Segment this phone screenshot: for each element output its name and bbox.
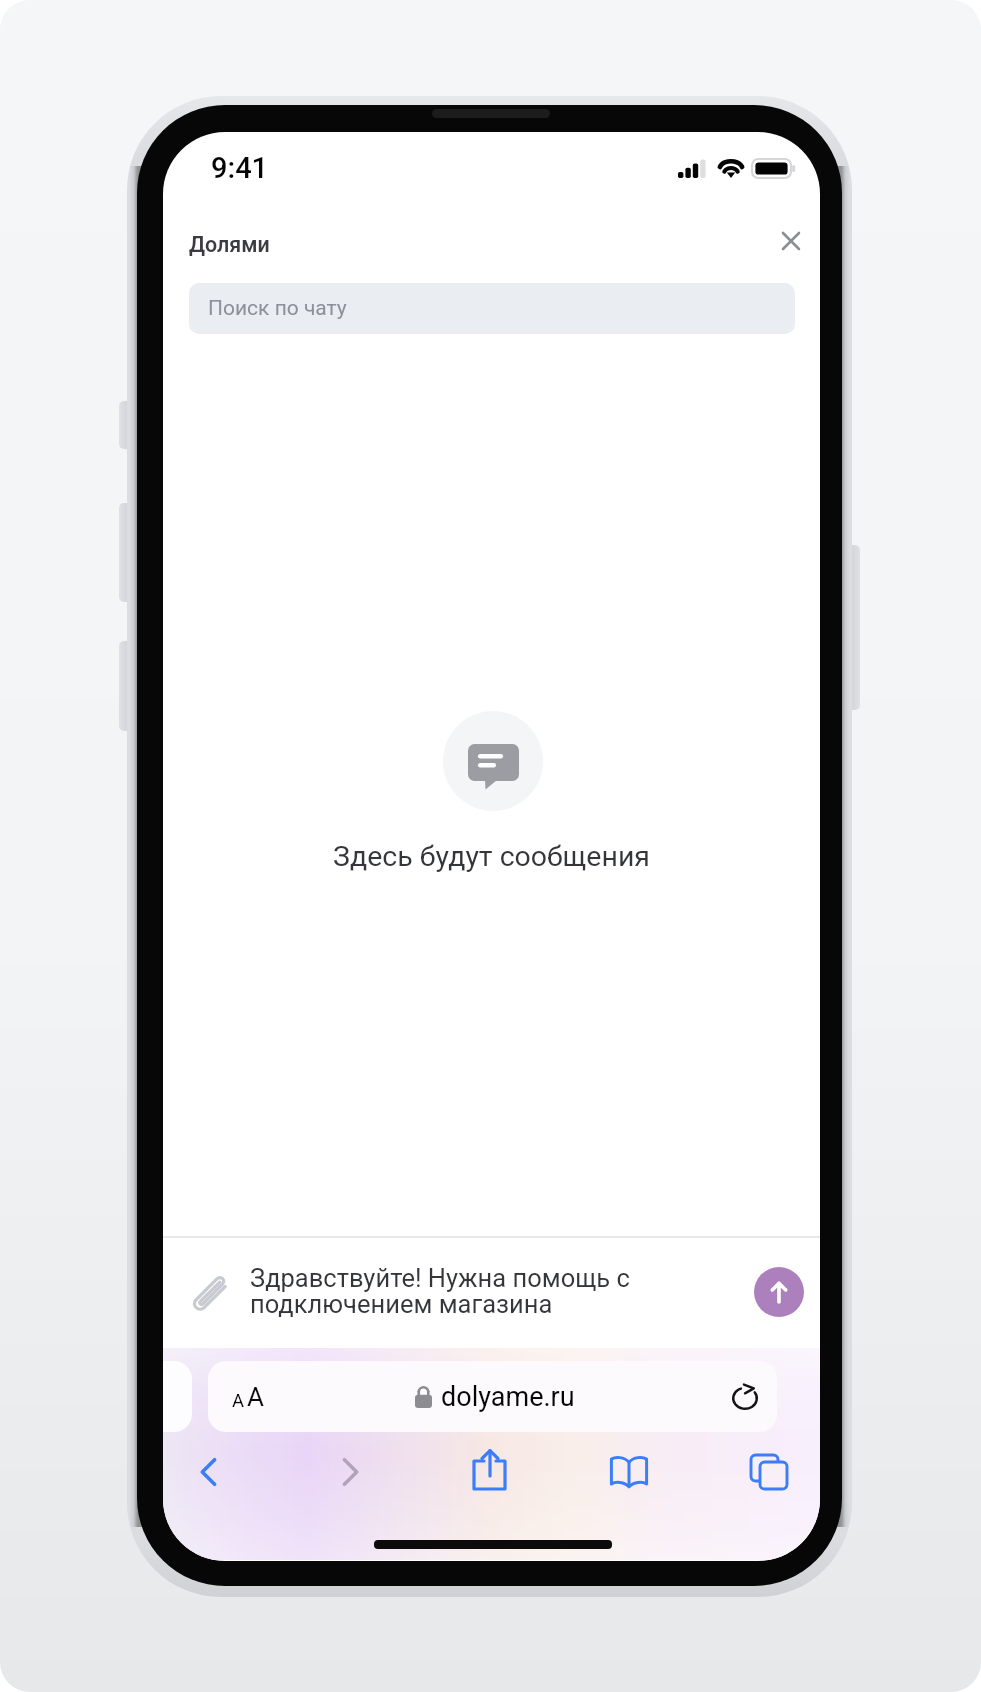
staticText: A — [232, 1390, 245, 1412]
button[interactable]: Поиск по чату — [189, 283, 795, 334]
button[interactable]: Share — [465, 1445, 515, 1495]
button[interactable]: Attach file — [182, 1266, 235, 1319]
button[interactable]: Tabs — [744, 1447, 794, 1497]
button[interactable]: Reload — [725, 1377, 765, 1417]
button[interactable]: A — [208, 1361, 777, 1432]
staticText: Долями — [189, 232, 270, 257]
staticText: A — [247, 1382, 264, 1412]
button[interactable]: Back — [184, 1447, 234, 1497]
button[interactable]: Close — [769, 219, 813, 263]
staticText: 9:41 — [211, 151, 269, 185]
button[interactable]: Forward — [325, 1447, 375, 1497]
staticText: Здесь будут сообщения — [333, 840, 650, 873]
staticText: dolyame.ru — [441, 1381, 575, 1413]
staticText: Поиск по чату — [208, 296, 347, 321]
button[interactable]: Send — [754, 1267, 804, 1317]
button[interactable]: Bookmarks — [604, 1446, 654, 1496]
staticText: Здравствуйте! Нужна помощь с подключение… — [250, 1263, 720, 1319]
